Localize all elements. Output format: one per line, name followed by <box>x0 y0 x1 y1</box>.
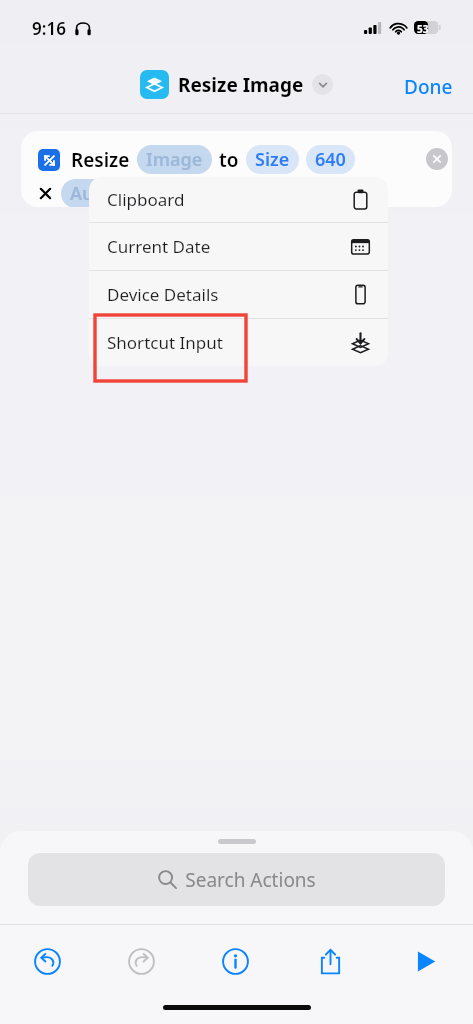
staticText: Auto <box>70 181 112 206</box>
button[interactable]: Size <box>246 145 299 174</box>
staticText: Resize Image <box>178 72 304 98</box>
button[interactable]: Current Date <box>89 223 388 270</box>
button[interactable]: Auto <box>61 179 121 207</box>
staticText: 640 <box>315 147 346 172</box>
button[interactable]: 640 <box>306 145 355 174</box>
staticText: Image <box>146 147 203 172</box>
staticText: to <box>219 147 239 173</box>
staticText: Clipboard <box>107 188 185 211</box>
button[interactable]: Clipboard <box>89 177 388 222</box>
staticText: Current Date <box>107 235 211 258</box>
button[interactable]: Undo <box>0 925 94 997</box>
staticText: 53 <box>417 22 429 36</box>
staticText: Size <box>255 147 290 172</box>
button[interactable]: Device Details <box>89 271 388 318</box>
staticText: Shortcut Input <box>107 331 223 354</box>
button[interactable]: Info <box>188 925 283 997</box>
button[interactable]: Redo <box>94 925 188 997</box>
button[interactable]: Remove action <box>426 148 448 170</box>
staticText: Resize <box>71 147 130 173</box>
button[interactable]: Done <box>398 70 459 104</box>
staticText: 9:16 <box>32 17 66 40</box>
button[interactable]: Show shortcut details <box>312 74 333 95</box>
button[interactable]: Shortcut Input <box>89 319 388 366</box>
button[interactable]: Search Actions <box>28 853 445 906</box>
staticText: Done <box>404 74 453 100</box>
button[interactable]: Share <box>283 925 378 997</box>
button[interactable]: Resize <box>21 131 452 207</box>
staticText: Search Actions <box>185 867 316 893</box>
staticText: Device Details <box>107 283 219 306</box>
button[interactable]: Image <box>137 145 212 174</box>
button[interactable]: Run <box>378 925 473 997</box>
button[interactable] <box>140 70 169 99</box>
